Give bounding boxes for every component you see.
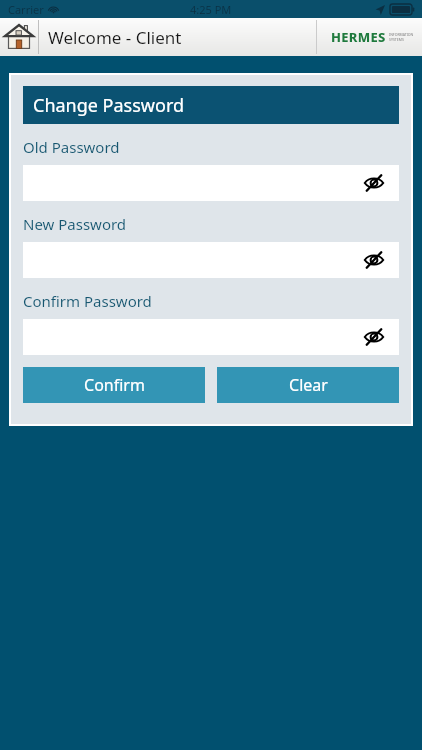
- staticText: HERMES: [331, 28, 386, 46]
- button[interactable]: Show Old Password: [361, 170, 387, 196]
- button[interactable]: Show Old Password: [23, 165, 399, 201]
- button[interactable]: Home: [0, 18, 38, 56]
- staticText: Confirm: [84, 374, 145, 396]
- button[interactable]: Clear: [217, 367, 399, 403]
- staticText: Change Password: [33, 93, 185, 118]
- staticText: INFORMATION: [389, 32, 414, 37]
- staticText: Old Password: [23, 137, 120, 157]
- staticText: 4:25 PM: [190, 2, 232, 17]
- staticText: New Password: [23, 214, 127, 234]
- button[interactable]: Change Password: [23, 86, 399, 124]
- staticText: SYSTEMS: [389, 37, 404, 42]
- staticText: Clear: [289, 374, 328, 396]
- staticText: Confirm Password: [23, 291, 152, 311]
- staticText: Welcome - Client: [48, 26, 182, 49]
- button[interactable]: Show Confirm Password: [361, 324, 387, 350]
- button[interactable]: Show New Password: [361, 247, 387, 273]
- button[interactable]: Show New Password: [23, 242, 399, 278]
- staticText: Carrier: [8, 2, 44, 17]
- button[interactable]: Confirm: [23, 367, 205, 403]
- button[interactable]: Show Confirm Password: [23, 319, 399, 355]
